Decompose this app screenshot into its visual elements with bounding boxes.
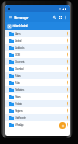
- button[interactable]: VoiceRecorder: [5, 114, 70, 121]
- button[interactable]: Documents: [5, 58, 70, 65]
- button[interactable]: DCIM: [5, 51, 70, 58]
- button[interactable]: Item options: [65, 86, 70, 93]
- button[interactable]: Item options: [65, 79, 70, 86]
- button[interactable]: Download: [5, 65, 70, 72]
- button[interactable]: Pictures: [5, 93, 70, 100]
- button[interactable]: Item options: [65, 72, 70, 79]
- staticText: Podcasts: [15, 102, 65, 106]
- staticText: Audiobooks: [15, 46, 65, 50]
- button[interactable]: Item options: [65, 93, 70, 100]
- button[interactable]: Item options: [65, 37, 70, 44]
- button[interactable]: Audiobooks: [5, 44, 70, 51]
- staticText: > /sdcard > Android: [12, 24, 28, 28]
- button[interactable]: Ringtones: [5, 107, 70, 114]
- staticText: Movies: [15, 74, 65, 78]
- button[interactable]: Notifications: [5, 86, 70, 93]
- button[interactable]: WhatsApp: [5, 121, 70, 128]
- staticText: Music: [15, 81, 65, 85]
- staticText: WhatsApp: [15, 123, 65, 127]
- button[interactable]: Item options: [65, 107, 70, 114]
- staticText: Ringtones: [15, 109, 65, 113]
- button[interactable]: Search: [51, 12, 57, 22]
- button[interactable]: Navigation menu: [8, 12, 13, 22]
- button[interactable]: Movies: [5, 72, 70, 79]
- button[interactable]: Alarms: [5, 30, 70, 37]
- staticText: Android: [15, 39, 65, 43]
- button[interactable]: Android: [5, 37, 70, 44]
- staticText: Notifications: [15, 88, 65, 92]
- button[interactable]: More options: [63, 12, 68, 22]
- staticText: VoiceRecorder: [15, 116, 65, 120]
- button[interactable]: Podcasts: [5, 100, 70, 107]
- staticText: Download: [15, 67, 65, 71]
- staticText: Alarms: [15, 32, 65, 36]
- button[interactable]: Item options: [65, 100, 70, 107]
- button[interactable]: Item options: [65, 30, 70, 37]
- button[interactable]: Music: [5, 79, 70, 86]
- staticText: Pictures: [15, 95, 65, 99]
- button[interactable]: Item options: [65, 65, 70, 72]
- button[interactable]: Item options: [65, 121, 70, 128]
- staticText: File manager: [14, 15, 28, 20]
- staticText: Documents: [15, 60, 65, 64]
- button[interactable]: Item options: [65, 51, 70, 58]
- button[interactable]: Add new: [59, 122, 66, 129]
- button[interactable]: Item options: [65, 58, 70, 65]
- button[interactable]: Item options: [65, 114, 70, 121]
- staticText: DCIM: [15, 53, 65, 57]
- button[interactable]: Item options: [65, 44, 70, 51]
- button[interactable]: Switch view: [57, 12, 63, 22]
